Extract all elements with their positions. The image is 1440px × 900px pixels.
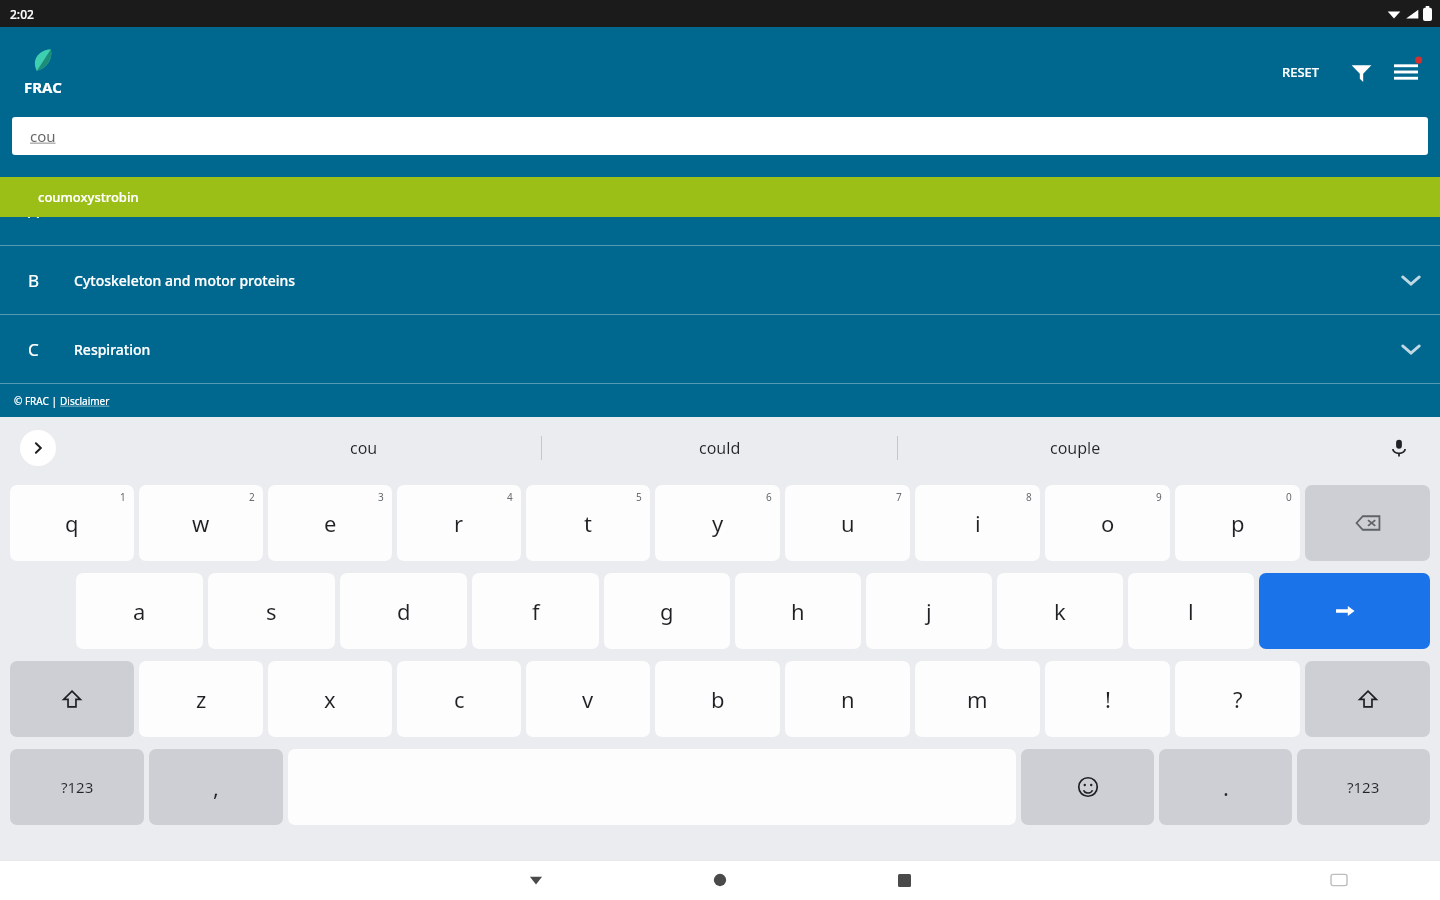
staticText: e (324, 508, 337, 538)
button[interactable]: ?123 (1297, 749, 1430, 825)
button[interactable]: FRAC home (24, 48, 62, 97)
staticText: could (699, 437, 741, 459)
button[interactable]: p (1175, 485, 1300, 561)
staticText: ?123 (1347, 777, 1380, 797)
staticText: Disclaimer (60, 394, 110, 408)
button[interactable]: f (472, 573, 599, 649)
button[interactable]: Filter (1344, 55, 1378, 89)
button[interactable]: ! (1045, 661, 1170, 737)
button[interactable]: s (208, 573, 335, 649)
button[interactable]: w (139, 485, 263, 561)
button[interactable]: Voice input (1384, 433, 1414, 463)
button[interactable]: couple (898, 417, 1253, 479)
button[interactable]: coumoxystrobin (0, 177, 1440, 217)
staticText: Cytoskeleton and motor proteins (74, 271, 296, 290)
staticText: c (454, 684, 465, 714)
button[interactable]: m (915, 661, 1040, 737)
button[interactable]: o (1045, 485, 1170, 561)
staticText: 5 (636, 490, 642, 504)
staticText: ? (1233, 684, 1243, 714)
button[interactable]: B (0, 246, 1440, 314)
staticText: q (65, 508, 79, 538)
staticText: 4 (507, 490, 513, 504)
button[interactable]: . (1159, 749, 1292, 825)
staticText: k (1054, 596, 1066, 626)
button[interactable]: Shift (1305, 661, 1430, 737)
button[interactable]: t (526, 485, 650, 561)
button[interactable]: C (0, 315, 1440, 383)
button[interactable]: q (10, 485, 134, 561)
button[interactable]: could (542, 417, 897, 479)
button[interactable]: Back (513, 860, 559, 900)
button[interactable]: Disclaimer (60, 394, 110, 408)
staticText: ! (1105, 684, 1111, 714)
button[interactable]: Expand toolbar (20, 430, 56, 466)
staticText: cou (30, 126, 56, 146)
button[interactable]: Emoji (1021, 749, 1154, 825)
staticText: l (1188, 596, 1194, 626)
button[interactable]: i (915, 485, 1040, 561)
button[interactable]: Backspace (1305, 485, 1430, 561)
button[interactable]: Enter (1259, 573, 1430, 649)
staticText: 2 (249, 490, 255, 504)
staticText: FRAC (24, 77, 62, 97)
staticText: 3 (378, 490, 384, 504)
button[interactable]: e (268, 485, 392, 561)
button[interactable]: y (655, 485, 780, 561)
button[interactable]: h (735, 573, 861, 649)
button[interactable]: n (785, 661, 910, 737)
button[interactable]: k (997, 573, 1123, 649)
button[interactable]: x (268, 661, 392, 737)
staticText: couple (1050, 437, 1101, 459)
button[interactable]: d (340, 573, 467, 649)
staticText: u (841, 508, 855, 538)
staticText: © FRAC | (14, 394, 60, 408)
staticText: h (791, 596, 805, 626)
staticText: j (926, 596, 932, 626)
button[interactable]: b (655, 661, 780, 737)
button[interactable]: cou (12, 117, 1428, 155)
staticText: w (192, 508, 210, 538)
staticText: y (712, 508, 724, 538)
button[interactable]: Shift (10, 661, 134, 737)
staticText: t (584, 508, 592, 538)
staticText: o (1101, 508, 1115, 538)
staticText: , (213, 772, 219, 802)
staticText: 8 (1026, 490, 1032, 504)
staticText: 2:02 (10, 6, 34, 22)
staticText: 1 (120, 490, 126, 504)
staticText: s (266, 596, 277, 626)
button[interactable]: ?123 (10, 749, 144, 825)
staticText: B (28, 269, 74, 292)
staticText: RESET (1282, 63, 1320, 81)
button[interactable]: , (149, 749, 283, 825)
button[interactable]: l (1128, 573, 1254, 649)
button[interactable]: cou (187, 417, 541, 479)
button[interactable]: r (397, 485, 521, 561)
button[interactable]: Home (697, 860, 743, 900)
button[interactable]: A (0, 177, 1440, 245)
staticText: n (841, 684, 855, 714)
button[interactable]: RESET (1274, 53, 1328, 91)
button[interactable]: ? (1175, 661, 1300, 737)
button[interactable]: v (526, 661, 650, 737)
button[interactable]: Menu (1388, 54, 1424, 90)
staticText: i (975, 508, 981, 538)
staticText: C (28, 338, 74, 361)
staticText: 6 (766, 490, 772, 504)
staticText: m (967, 684, 988, 714)
staticText: cou (350, 437, 378, 459)
staticText: d (397, 596, 411, 626)
button[interactable]: Recents (881, 860, 927, 900)
button[interactable]: Switch keyboard (1324, 865, 1354, 895)
button[interactable]: z (139, 661, 263, 737)
staticText: v (582, 684, 594, 714)
button[interactable]: j (866, 573, 992, 649)
button[interactable]: g (604, 573, 730, 649)
button[interactable]: c (397, 661, 521, 737)
button[interactable]: u (785, 485, 910, 561)
staticText: z (196, 684, 207, 714)
button[interactable]: a (76, 573, 203, 649)
staticText: 7 (896, 490, 902, 504)
